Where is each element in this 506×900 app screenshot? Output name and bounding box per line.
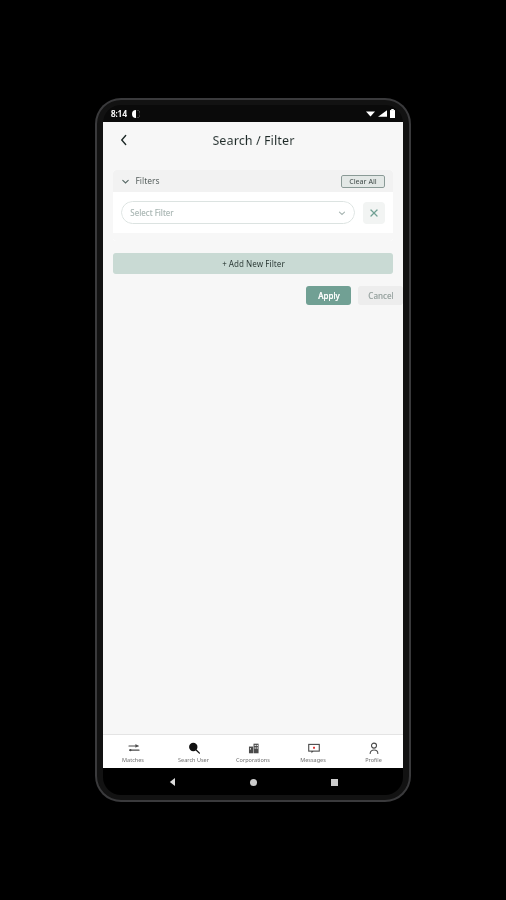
button[interactable]: Matches <box>103 735 163 768</box>
button[interactable]: Back <box>162 771 184 793</box>
button[interactable]: Cancel <box>358 286 403 305</box>
button[interactable]: Filters <box>121 170 385 192</box>
button[interactable]: Recents <box>323 771 345 793</box>
staticText: + Add New Filter <box>222 258 285 269</box>
button[interactable]: Search User <box>163 735 223 768</box>
button[interactable]: Messages <box>283 735 343 768</box>
button[interactable]: Select Filter <box>130 201 346 224</box>
staticText: Apply <box>318 290 340 301</box>
staticText: Profile <box>365 756 382 763</box>
staticText: Filters <box>135 175 160 187</box>
staticText: Search User <box>178 756 209 763</box>
staticText: Search / Filter <box>212 132 295 149</box>
staticText: 8:14 <box>111 108 127 119</box>
button[interactable]: Profile <box>343 735 403 768</box>
staticText: Matches <box>122 756 144 763</box>
staticText: Corporations <box>236 756 270 763</box>
staticText: Select Filter <box>130 207 174 218</box>
staticText: Messages <box>300 756 326 763</box>
button[interactable]: Clear All <box>341 175 385 188</box>
staticText: Cancel <box>368 290 394 301</box>
button[interactable]: + Add New Filter <box>113 253 393 274</box>
button[interactable]: Corporations <box>223 735 283 768</box>
button[interactable]: Remove filter <box>363 202 385 224</box>
staticText: Clear All <box>349 177 377 187</box>
button[interactable]: Apply <box>306 286 351 305</box>
button[interactable]: Home <box>242 771 264 793</box>
button[interactable]: Back <box>109 125 139 155</box>
